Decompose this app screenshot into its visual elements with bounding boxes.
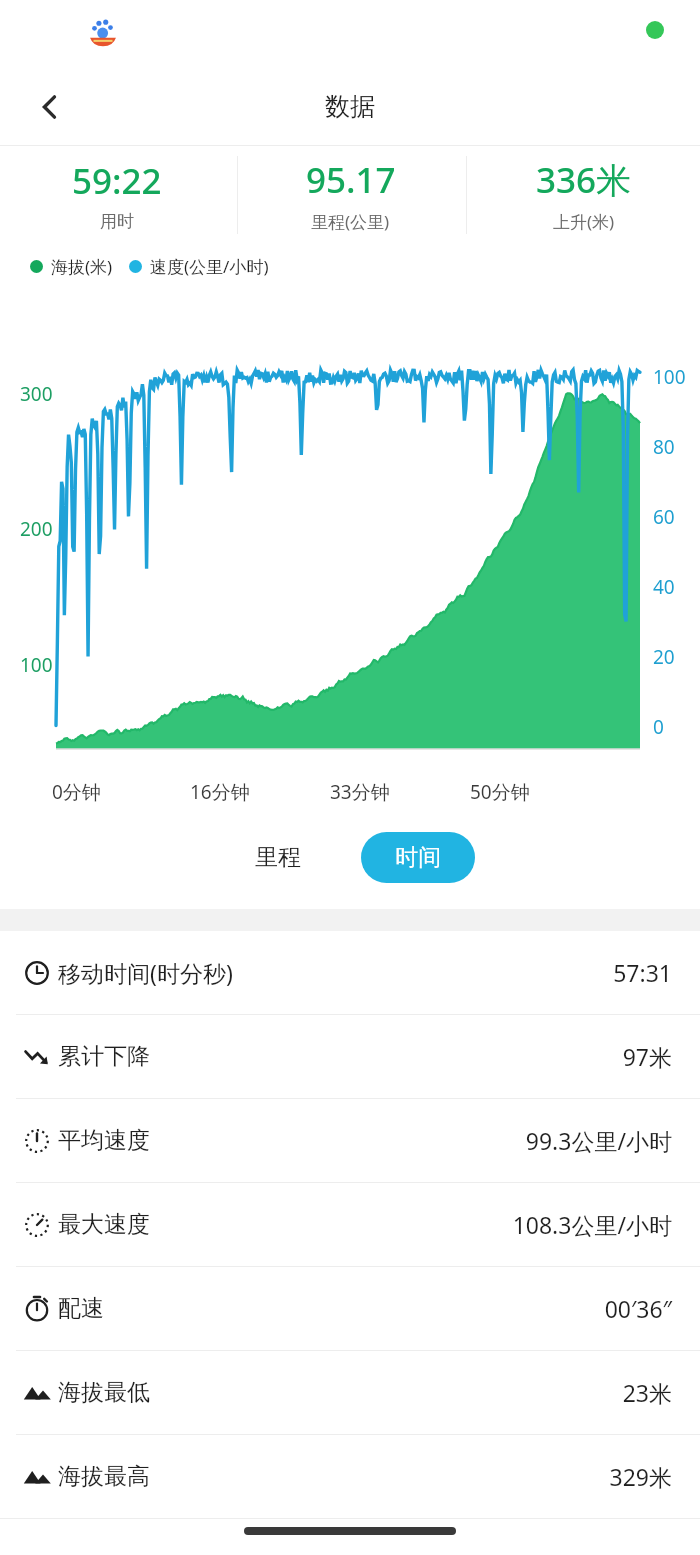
staticText: 59:22 — [72, 157, 162, 205]
staticText: 108.3公里/小时 — [512, 1209, 672, 1240]
button[interactable]: 海拔最高 — [0, 1435, 700, 1518]
staticText: 329米 — [609, 1461, 672, 1492]
staticText: 40 — [653, 574, 675, 600]
staticText: 里程 — [255, 843, 301, 872]
staticText: 海拔最高 — [58, 1462, 150, 1491]
staticText: 57:31 — [613, 957, 672, 988]
staticText: 平均速度 — [58, 1126, 150, 1155]
button[interactable]: 时间 — [361, 832, 475, 883]
staticText: 200 — [20, 516, 53, 542]
button[interactable]: 59:22 — [0, 146, 234, 243]
button[interactable]: 配速 — [0, 1267, 700, 1350]
button[interactable]: 平均速度 — [0, 1099, 700, 1182]
staticText: 最大速度 — [58, 1210, 150, 1239]
staticText: 累计下降 — [58, 1042, 150, 1071]
staticText: 300 — [20, 381, 53, 407]
staticText: 里程(公里) — [311, 210, 390, 233]
button[interactable]: 累计下降 — [0, 1015, 700, 1098]
staticText: 100 — [20, 652, 53, 678]
staticText: 0分钟 — [52, 779, 101, 805]
button[interactable]: 海拔最低 — [0, 1351, 700, 1434]
staticText: 时间 — [395, 843, 441, 872]
button[interactable]: 移动时间(时分秒) — [0, 931, 700, 1014]
staticText: 50分钟 — [470, 779, 530, 805]
button[interactable]: 里程 — [225, 833, 331, 882]
staticText: 100 — [653, 364, 686, 390]
staticText: 移动时间(时分秒) — [58, 957, 233, 988]
staticText: 上升(米) — [553, 210, 615, 233]
staticText: 97米 — [622, 1041, 672, 1072]
staticText: 0 — [653, 714, 664, 740]
staticText: 33分钟 — [330, 779, 390, 805]
staticText: 99.3公里/小时 — [525, 1125, 672, 1156]
staticText: 海拔(米) — [51, 255, 113, 278]
staticText: 用时 — [100, 211, 134, 232]
staticText: 20 — [653, 644, 675, 670]
button[interactable]: 95.17 — [234, 146, 467, 243]
button[interactable]: 最大速度 — [0, 1183, 700, 1266]
staticText: 速度(公里/小时) — [150, 255, 269, 278]
staticText: 数据 — [325, 91, 375, 122]
button[interactable]: Back — [18, 75, 82, 139]
button[interactable]: 336米 — [467, 146, 700, 243]
staticText: 海拔最低 — [58, 1378, 150, 1407]
staticText: 60 — [653, 504, 675, 530]
staticText: 23米 — [622, 1377, 672, 1408]
staticText: 配速 — [58, 1294, 104, 1323]
staticText: 16分钟 — [190, 779, 250, 805]
staticText: 00′36″ — [604, 1293, 672, 1324]
staticText: 336米 — [536, 156, 632, 204]
staticText: 80 — [653, 434, 675, 460]
staticText: 95.17 — [306, 156, 396, 204]
